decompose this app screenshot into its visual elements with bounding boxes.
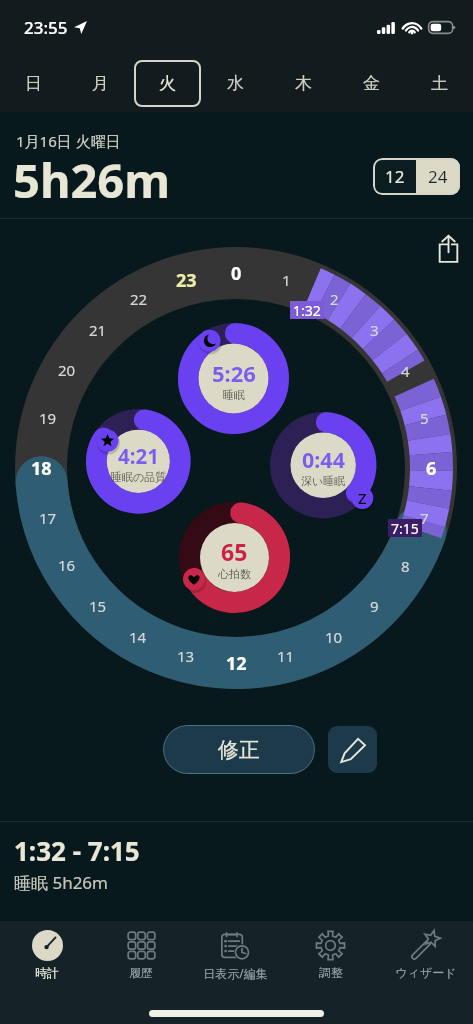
staticText: 13 [177,646,195,666]
staticText: 日 [25,73,42,94]
button[interactable]: 時計 [0,921,94,989]
button[interactable]: 調整 [283,921,378,989]
staticText: 12 [226,651,247,676]
staticText: 24 [428,165,448,188]
button[interactable]: 5:26 [164,309,303,448]
staticText: 1:32 [293,301,321,319]
staticText: 12 [385,165,405,188]
staticText: 22 [130,289,148,309]
staticText: 18 [31,456,52,481]
button[interactable]: Z [256,398,390,532]
staticText: 20 [58,360,76,380]
button[interactable]: 4:21 [72,395,205,528]
staticText: 7 [420,508,429,528]
button[interactable]: 水 [201,54,269,112]
staticText: 調整 [319,965,343,980]
staticText: 睡眠 5h26m [14,871,108,894]
staticText: 時計 [35,965,59,980]
staticText: 23 [176,268,197,293]
staticText: 65 [221,536,248,567]
staticText: 心拍数 [218,567,251,581]
staticText: 3 [370,320,379,340]
button[interactable]: 土 [405,54,473,112]
staticText: 11 [277,646,295,666]
staticText: 21 [89,320,107,340]
staticText: 火 [159,73,176,94]
staticText: 月 [92,73,109,94]
staticText: 金 [363,73,380,94]
staticText: 0 [231,261,242,286]
staticText: 10 [325,627,343,647]
button[interactable]: 日表示/編集 [188,921,283,989]
button[interactable]: 木 [269,54,337,112]
staticText: 4:21 [118,442,159,470]
button[interactable]: 履歴 [94,921,188,989]
staticText: 2 [330,289,339,309]
button[interactable]: 火 [134,54,201,112]
button[interactable]: 24 [416,158,460,195]
staticText: 0:44 [302,445,345,474]
staticText: 19 [39,408,57,428]
staticText: 睡眠 [223,388,245,402]
staticText: 1:32 - 7:15 [14,833,140,868]
staticText: 16 [58,555,76,575]
staticText: ウィザード [395,965,457,980]
button[interactable]: 月 [67,54,134,112]
button[interactable]: 修正 [163,725,315,774]
staticText: 修正 [218,737,260,763]
staticText: 7:15 [391,519,419,537]
button[interactable]: 65 [165,488,304,627]
staticText: 9 [370,596,379,616]
staticText: 14 [129,627,147,647]
staticText: 17 [39,508,57,528]
staticText: 水 [227,73,244,94]
staticText: 1 [282,270,291,290]
staticText: 15 [89,596,107,616]
button[interactable]: 日 [0,54,67,112]
button[interactable]: Share [428,229,468,269]
staticText: 木 [295,73,312,94]
staticText: 深い睡眠 [301,474,346,488]
staticText: 土 [431,73,448,94]
staticText: 6 [426,456,437,481]
staticText: 1月16日 火曜日 [16,131,121,151]
button[interactable]: 金 [337,54,405,112]
button[interactable]: Edit [328,726,377,773]
staticText: 5:26 [212,358,256,388]
staticText: 23:55 [24,16,68,39]
staticText: 4 [401,361,410,381]
staticText: Z [358,488,367,508]
staticText: 履歴 [129,965,153,980]
button[interactable]: ウィザード [378,921,473,989]
button[interactable]: 12 [373,158,416,195]
staticText: 8 [401,556,410,576]
staticText: 5h26m [13,148,171,212]
staticText: 睡眠の品質 [111,470,167,484]
staticText: 5 [420,408,429,428]
staticText: 日表示/編集 [203,965,268,981]
